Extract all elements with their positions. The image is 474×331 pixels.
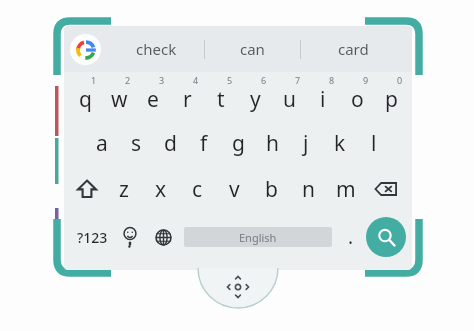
- staticText: English: [239, 230, 277, 245]
- button[interactable]: s: [119, 120, 153, 166]
- button[interactable]: f: [187, 120, 221, 166]
- button[interactable]: check: [109, 26, 204, 72]
- staticText: j: [303, 129, 309, 158]
- button[interactable]: q: [68, 72, 102, 120]
- button[interactable]: o: [340, 72, 374, 120]
- button[interactable]: Emoji: [114, 212, 146, 262]
- button[interactable]: e: [136, 72, 170, 120]
- staticText: 0: [397, 74, 403, 86]
- staticText: r: [183, 85, 192, 114]
- staticText: w: [111, 85, 128, 114]
- staticText: v: [229, 175, 240, 204]
- staticText: i: [320, 85, 326, 114]
- button[interactable]: t: [204, 72, 238, 120]
- staticText: k: [334, 129, 346, 158]
- staticText: 5: [227, 74, 233, 86]
- staticText: n: [302, 175, 315, 204]
- staticText: s: [131, 129, 142, 158]
- button[interactable]: v: [216, 166, 253, 212]
- staticText: l: [371, 129, 377, 158]
- button[interactable]: Google: [70, 34, 101, 65]
- staticText: 3: [159, 74, 165, 86]
- staticText: card: [338, 39, 369, 59]
- staticText: 4: [193, 74, 199, 86]
- staticText: p: [385, 85, 398, 114]
- button[interactable]: k: [323, 120, 357, 166]
- button[interactable]: ?123: [70, 212, 114, 262]
- button[interactable]: i: [306, 72, 340, 120]
- staticText: 9: [363, 74, 369, 86]
- button[interactable]: b: [253, 166, 290, 212]
- staticText: d: [164, 129, 177, 158]
- staticText: ?123: [77, 228, 108, 247]
- button[interactable]: z: [105, 166, 142, 212]
- staticText: c: [192, 175, 203, 204]
- button[interactable]: Search: [366, 217, 406, 257]
- staticText: 6: [261, 74, 267, 86]
- button[interactable]: m: [327, 166, 364, 212]
- button[interactable]: l: [357, 120, 391, 166]
- button[interactable]: j: [289, 120, 323, 166]
- button[interactable]: Shift: [68, 166, 105, 212]
- button[interactable]: g: [221, 120, 255, 166]
- staticText: b: [265, 175, 278, 204]
- button[interactable]: h: [255, 120, 289, 166]
- staticText: g: [232, 129, 245, 158]
- button[interactable]: .: [336, 212, 366, 262]
- button[interactable]: Backspace: [364, 166, 408, 212]
- staticText: t: [217, 85, 225, 114]
- staticText: 7: [295, 74, 301, 86]
- button[interactable]: Change language: [146, 212, 180, 262]
- button[interactable]: n: [290, 166, 327, 212]
- button[interactable]: c: [179, 166, 216, 212]
- staticText: x: [155, 175, 167, 204]
- staticText: y: [250, 85, 261, 114]
- button[interactable]: p: [374, 72, 408, 120]
- staticText: z: [119, 175, 129, 204]
- button[interactable]: r: [170, 72, 204, 120]
- button[interactable]: x: [142, 166, 179, 212]
- staticText: check: [136, 39, 177, 59]
- button[interactable]: card: [301, 26, 406, 72]
- staticText: a: [96, 129, 108, 158]
- button[interactable]: d: [153, 120, 187, 166]
- staticText: 8: [329, 74, 335, 86]
- button[interactable]: w: [102, 72, 136, 120]
- staticText: o: [351, 85, 364, 114]
- staticText: q: [79, 85, 92, 114]
- button[interactable]: y: [238, 72, 272, 120]
- button[interactable]: English: [184, 227, 332, 247]
- button[interactable]: a: [85, 120, 119, 166]
- staticText: m: [336, 175, 356, 204]
- button[interactable]: can: [205, 26, 300, 72]
- button[interactable]: u: [272, 72, 306, 120]
- staticText: 2: [125, 74, 131, 86]
- staticText: f: [200, 129, 208, 158]
- staticText: h: [266, 129, 279, 158]
- staticText: e: [147, 85, 159, 114]
- staticText: .: [348, 224, 354, 250]
- staticText: 1: [91, 74, 97, 86]
- staticText: can: [240, 39, 265, 59]
- staticText: u: [283, 85, 296, 114]
